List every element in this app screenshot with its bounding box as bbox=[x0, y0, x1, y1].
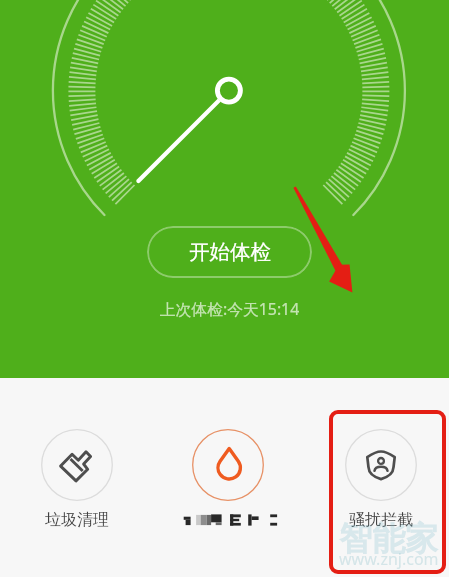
staticText: www.znj.com bbox=[339, 548, 439, 570]
staticText: 垃圾清理 bbox=[45, 510, 109, 530]
button[interactable]: 骚扰拦截 bbox=[326, 420, 436, 540]
staticText: 上次体检:今天15:14 bbox=[5, 298, 449, 320]
button[interactable]: 流量监控 bbox=[173, 420, 283, 540]
staticText: 骚扰拦截 bbox=[349, 510, 413, 530]
staticText: 开始体检 bbox=[189, 239, 271, 265]
button[interactable]: 垃圾清理 bbox=[22, 420, 132, 540]
staticText: 智能家 bbox=[339, 518, 438, 560]
button[interactable]: 开始体检 bbox=[147, 226, 312, 278]
